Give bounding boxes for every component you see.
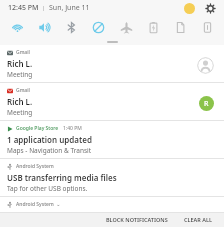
button[interactable]: Bluetooth (60, 16, 82, 38)
button[interactable]: Auto rotate (196, 16, 218, 38)
staticText: Android System ⌄ (16, 201, 61, 208)
button[interactable]: Contact avatar (197, 57, 214, 74)
staticText: Gmail (16, 49, 30, 56)
staticText: R (204, 99, 209, 109)
button[interactable]: Google Play Store (0, 121, 224, 158)
button[interactable]: Contact avatar R (199, 96, 214, 111)
button[interactable]: Sound (33, 16, 55, 38)
staticText: 12:45 PM (8, 3, 39, 13)
staticText: Meeting (7, 70, 33, 79)
button[interactable]: Wi-Fi (6, 16, 28, 38)
staticText: Android System (16, 163, 54, 170)
button[interactable]: Gmail (0, 83, 224, 120)
staticText: Google Play Store (16, 125, 59, 132)
staticText: 1 application updated (7, 134, 92, 145)
button[interactable]: CLEAR ALL (180, 214, 216, 225)
button[interactable]: Android System ⌄ (0, 197, 224, 212)
button[interactable]: Battery saver (142, 16, 164, 38)
button[interactable]: Gmail (0, 45, 224, 82)
staticText: Rich L. (7, 58, 33, 69)
staticText: | (42, 4, 46, 12)
staticText: 1:40 PM (63, 125, 82, 132)
staticText: Rich L. (7, 96, 33, 107)
button[interactable]: Do not disturb (87, 16, 109, 38)
staticText: BLOCK NOTIFICATIONS (106, 216, 168, 223)
staticText: Meeting (7, 108, 33, 117)
staticText: Maps - Navigation & Transit (7, 146, 92, 155)
staticText: Sun, June 11 (49, 3, 90, 13)
button[interactable]: BLOCK NOTIFICATIONS (102, 214, 172, 225)
staticText: USB transferring media files (7, 172, 117, 183)
staticText: CLEAR ALL (184, 216, 212, 223)
button[interactable]: Settings (204, 2, 216, 14)
button[interactable]: Airplane mode (115, 16, 137, 38)
button[interactable]: User profile (184, 3, 195, 14)
staticText: Tap for other USB options. (7, 184, 88, 193)
button[interactable]: Sync (169, 16, 191, 38)
staticText: Gmail (16, 87, 30, 94)
button[interactable]: Android System (0, 159, 224, 196)
